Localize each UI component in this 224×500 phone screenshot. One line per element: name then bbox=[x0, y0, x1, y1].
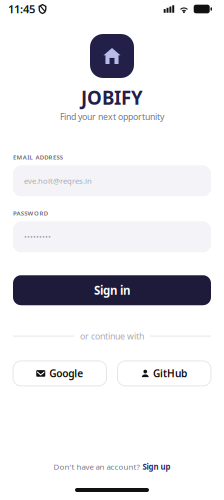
staticText: or continue with bbox=[80, 330, 144, 342]
button[interactable]: Sign in bbox=[13, 275, 211, 305]
staticText: Google bbox=[49, 367, 83, 380]
staticText: ••••••••• bbox=[24, 232, 51, 242]
staticText: Find your next opportunity bbox=[60, 111, 164, 122]
staticText: PASSWORD bbox=[13, 209, 48, 217]
staticText: 11:45 bbox=[8, 2, 35, 16]
staticText: eve.holt@reqres.in bbox=[24, 176, 92, 186]
staticText: JOBIFY bbox=[81, 85, 143, 110]
staticText: Sign in bbox=[94, 283, 130, 298]
button[interactable]: Google bbox=[13, 361, 106, 386]
staticText: Don't have an account? bbox=[53, 462, 139, 472]
button[interactable]: GitHub bbox=[117, 361, 211, 386]
staticText: EMAIL ADDRESS bbox=[13, 153, 63, 161]
staticText: GitHub bbox=[153, 367, 187, 380]
button[interactable]: Sign up bbox=[142, 462, 170, 472]
staticText: Sign up bbox=[142, 462, 170, 472]
